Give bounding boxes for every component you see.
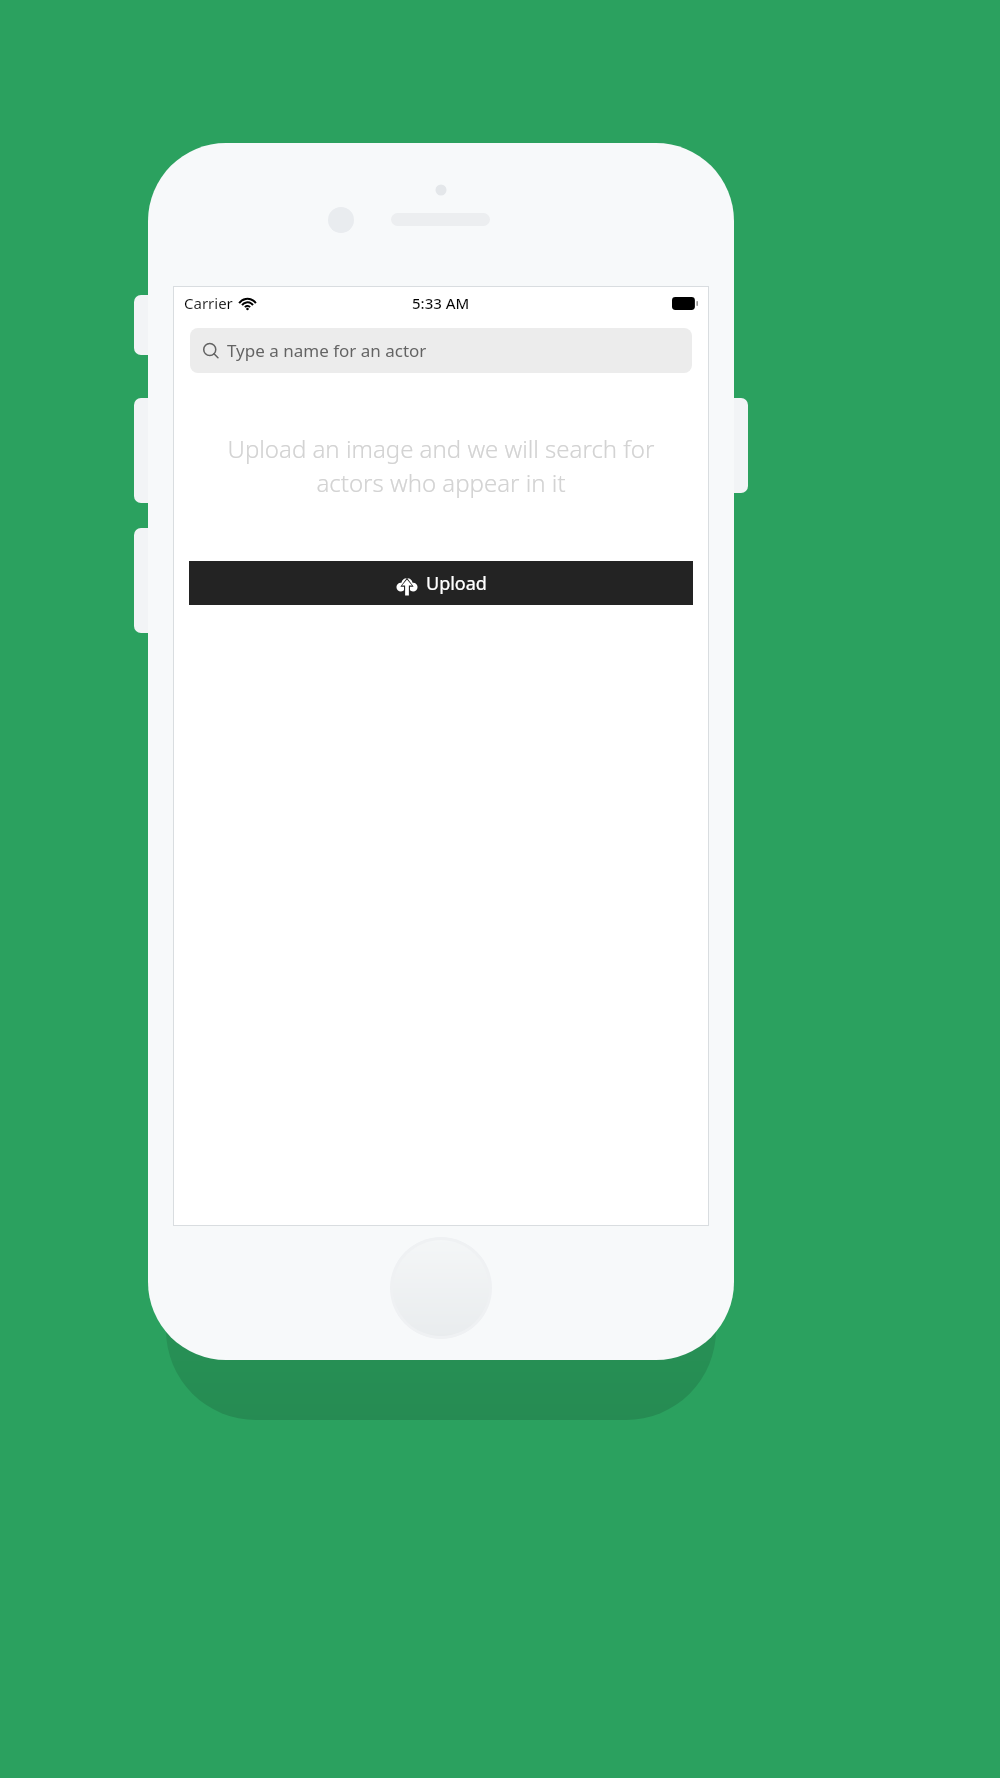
staticText: Upload an image and we will search for a… xyxy=(202,432,680,499)
staticText: 5:33 AM xyxy=(412,293,470,313)
button[interactable]: Type a name for an actor xyxy=(190,328,692,373)
staticText: Type a name for an actor xyxy=(227,339,427,362)
staticText: Upload xyxy=(426,571,487,596)
button[interactable]: Upload xyxy=(189,561,693,605)
staticText: Carrier xyxy=(184,293,233,313)
other: Upload xyxy=(396,573,418,595)
